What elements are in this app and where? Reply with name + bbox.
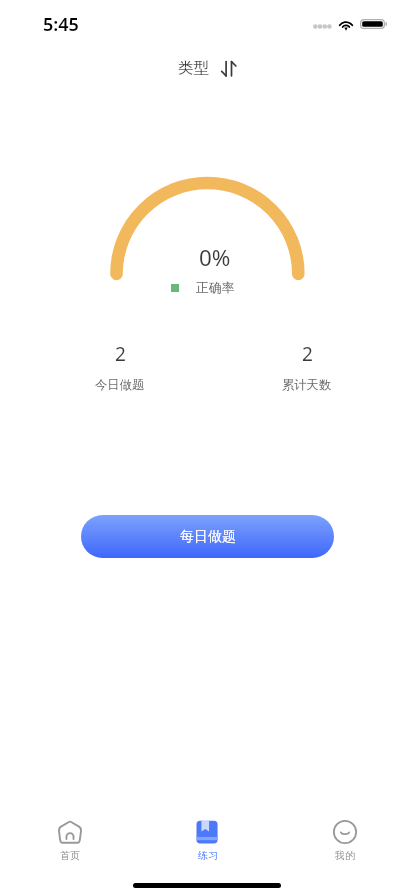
staticText: 正确率 xyxy=(196,280,235,296)
staticText: 2 xyxy=(115,341,126,367)
other: Home xyxy=(58,820,82,844)
staticText: 今日做题 xyxy=(95,377,145,392)
other: Profile xyxy=(333,820,357,844)
button[interactable]: Practice xyxy=(162,812,254,864)
staticText: 5:45 xyxy=(43,12,79,37)
button[interactable]: 2 xyxy=(70,341,170,392)
other: Sort xyxy=(222,61,236,76)
button[interactable]: Home xyxy=(24,812,116,864)
staticText: 累计天数 xyxy=(282,377,332,392)
button[interactable]: 每日做题 xyxy=(81,515,334,558)
staticText: 每日做题 xyxy=(180,528,236,546)
staticText: 我的 xyxy=(335,849,355,862)
staticText: 2 xyxy=(302,341,313,367)
staticText: 练习 xyxy=(198,849,218,862)
staticText: 首页 xyxy=(60,849,80,862)
other: Practice xyxy=(196,820,220,844)
button[interactable]: Profile xyxy=(299,812,391,864)
button[interactable]: 类型 xyxy=(178,58,236,77)
button[interactable]: 2 xyxy=(257,341,357,392)
staticText: 0% xyxy=(199,242,231,273)
staticText: 类型 xyxy=(178,58,209,77)
